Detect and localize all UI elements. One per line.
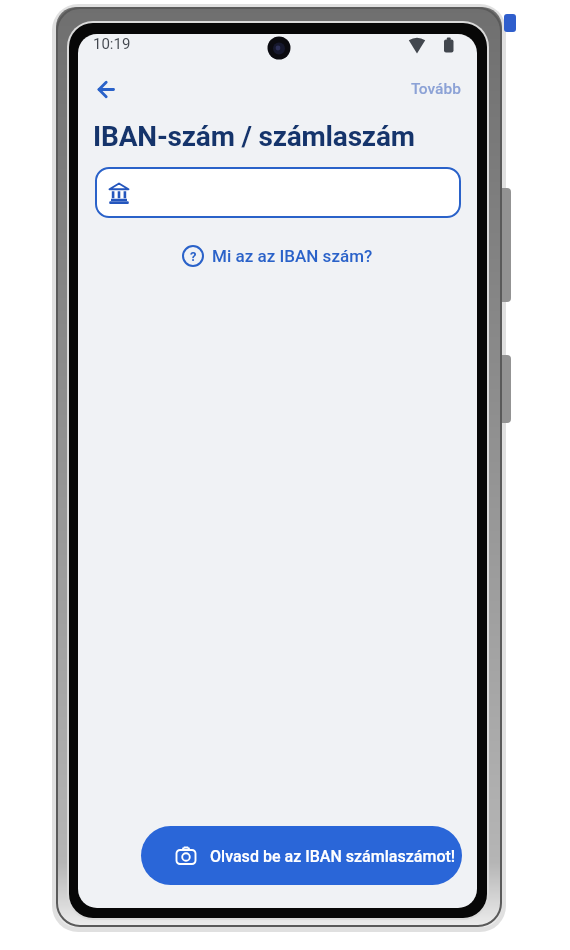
staticText: Olvasd be az IBAN számlaszámot! bbox=[210, 847, 456, 866]
button[interactable]: Olvasd be az IBAN számlaszámot! bbox=[141, 826, 462, 885]
button[interactable] bbox=[95, 167, 461, 218]
staticText: Mi az az IBAN szám? bbox=[212, 246, 373, 266]
button[interactable]: ? bbox=[182, 245, 373, 267]
staticText: IBAN-szám / számlaszám bbox=[93, 120, 415, 153]
button[interactable]: Tovább bbox=[401, 80, 461, 106]
button[interactable] bbox=[87, 72, 123, 106]
staticText: ? bbox=[190, 249, 197, 264]
staticText: Tovább bbox=[411, 80, 461, 98]
staticText: 10:19 bbox=[93, 35, 131, 53]
